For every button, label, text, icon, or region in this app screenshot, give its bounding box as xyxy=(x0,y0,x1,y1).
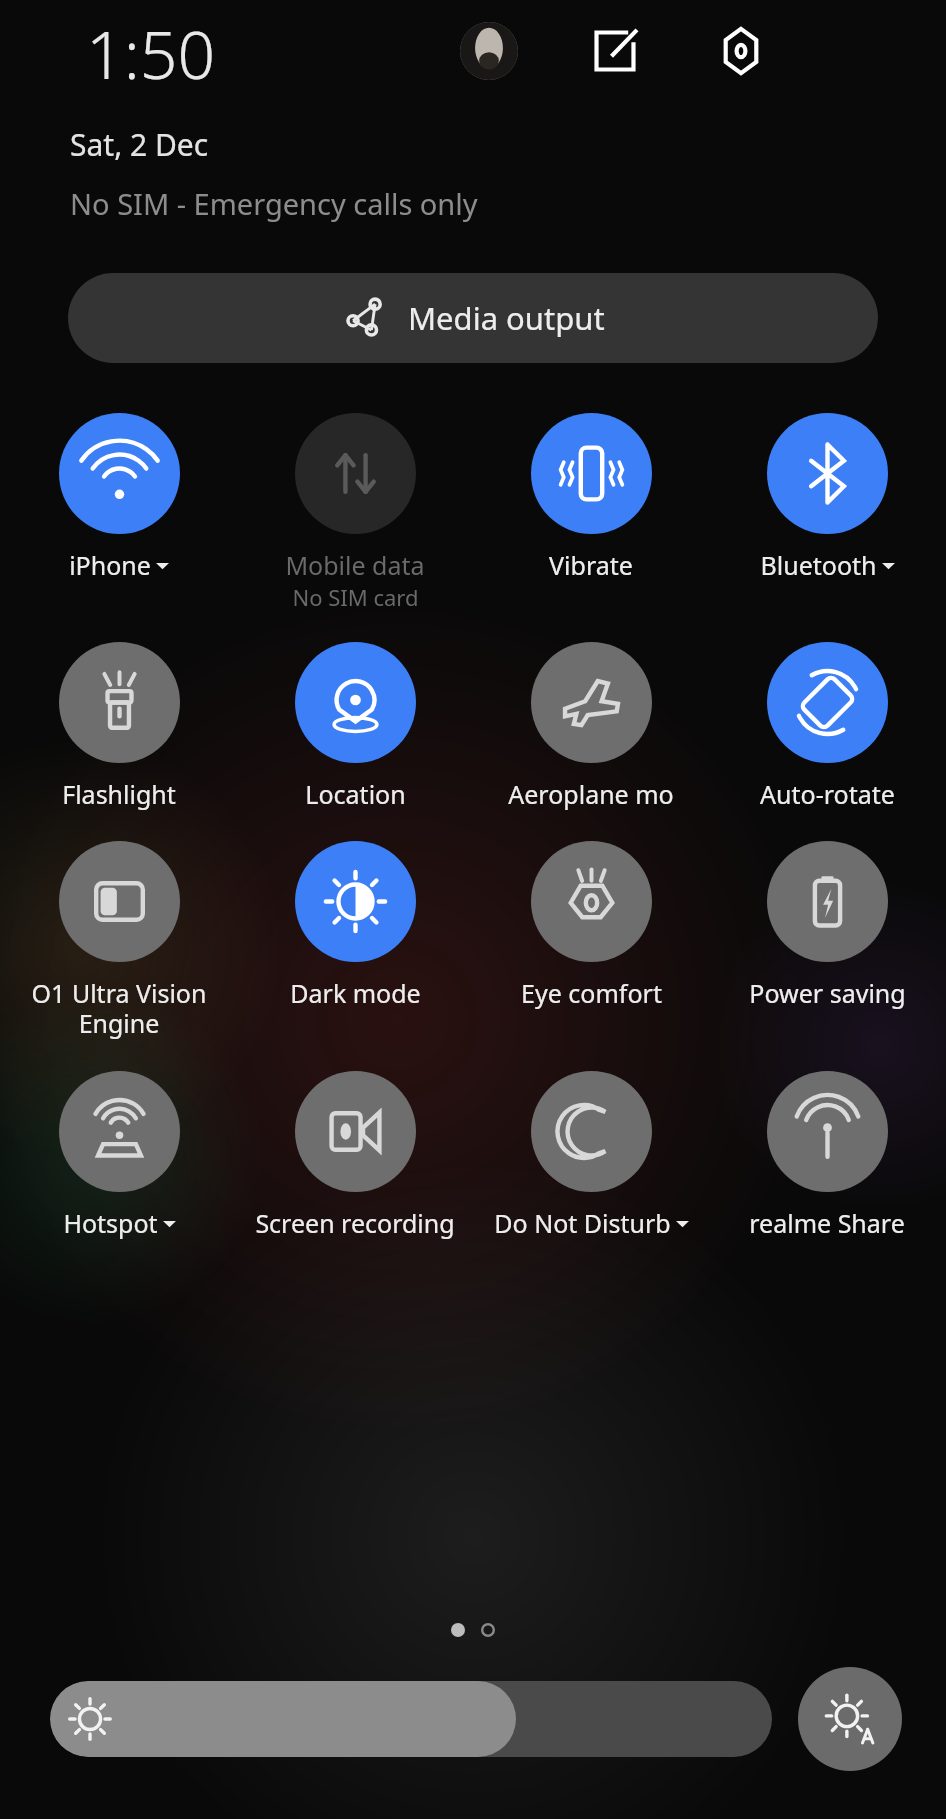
staticText: Dark mode xyxy=(290,976,421,1010)
button[interactable]: Vibrate xyxy=(531,413,652,534)
button[interactable]: realme Share xyxy=(767,1071,888,1192)
staticText: Media output xyxy=(408,297,605,339)
button[interactable]: Dark mode xyxy=(295,841,416,962)
staticText: Bluetooth xyxy=(760,548,877,582)
staticText: Flashlight xyxy=(62,777,176,811)
button[interactable]: iPhone xyxy=(59,413,180,534)
button[interactable]: Aeroplane mo xyxy=(531,642,652,763)
staticText: Eye comfort xyxy=(521,976,662,1010)
button[interactable]: Screen recording xyxy=(295,1071,416,1192)
staticText: Screen recording xyxy=(255,1206,455,1240)
button[interactable]: Edit xyxy=(586,22,644,80)
staticText: Auto-rotate xyxy=(760,777,895,811)
staticText: O1 Ultra Vision Engine xyxy=(15,976,223,1041)
button[interactable]: O1 Ultra Vision Engine xyxy=(59,841,180,962)
staticText: realme Share xyxy=(749,1206,905,1240)
button[interactable]: Auto brightness xyxy=(798,1667,902,1771)
button[interactable]: Do Not Disturb xyxy=(531,1071,652,1192)
button[interactable]: Media output xyxy=(68,273,878,363)
button[interactable]: Mobile data xyxy=(295,413,416,534)
button[interactable]: Brightness xyxy=(50,1681,772,1757)
staticText: Vibrate xyxy=(549,548,633,582)
staticText: Mobile data xyxy=(285,548,425,582)
button[interactable]: Power saving xyxy=(767,841,888,962)
button[interactable]: Eye comfort xyxy=(531,841,652,962)
button[interactable]: Flashlight xyxy=(59,642,180,763)
staticText: Do Not Disturb xyxy=(494,1206,671,1240)
button[interactable]: Location xyxy=(295,642,416,763)
button[interactable]: Auto-rotate xyxy=(767,642,888,763)
staticText: No SIM card xyxy=(292,582,419,612)
button[interactable]: Settings xyxy=(712,22,770,80)
button[interactable]: Profile xyxy=(460,22,518,80)
button[interactable]: Hotspot xyxy=(59,1071,180,1192)
staticText: Hotspot xyxy=(63,1206,158,1240)
staticText: Power saving xyxy=(749,976,906,1010)
staticText: iPhone xyxy=(69,548,151,582)
staticText: Aeroplane mo xyxy=(508,777,674,811)
button[interactable]: 1:50 xyxy=(86,8,216,98)
staticText: Location xyxy=(305,777,406,811)
staticText: No SIM - Emergency calls only xyxy=(70,184,478,223)
button[interactable]: Sat, 2 Dec xyxy=(70,124,209,165)
button[interactable]: Bluetooth xyxy=(767,413,888,534)
